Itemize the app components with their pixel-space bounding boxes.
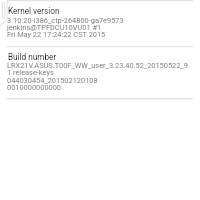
staticText: 1 release-keys bbox=[7, 68, 54, 77]
staticText: 044030454_201502120108 bbox=[7, 76, 98, 85]
staticText: jenkins@TPFDCU10VU01 #1 bbox=[7, 23, 102, 32]
staticText: 0010000000000 bbox=[7, 83, 61, 92]
staticText: Build number bbox=[8, 52, 57, 62]
staticText: Fri May 22 17:24:22 CST 2015 bbox=[7, 30, 106, 39]
staticText: LRX21V.ASUS.T00F_WW_user_3.23.40.52_2015… bbox=[7, 61, 188, 70]
staticText: Kernel version bbox=[8, 6, 60, 16]
staticText: 3.10.20-i386_ctp-264800-ga7e9573 bbox=[7, 16, 124, 25]
button[interactable] bbox=[0, 47, 200, 99]
button[interactable] bbox=[0, 1, 200, 46]
